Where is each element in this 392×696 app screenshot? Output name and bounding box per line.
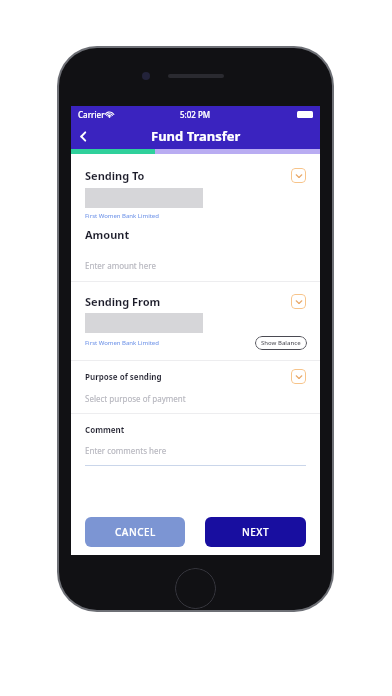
button[interactable]: Select recipient [291, 168, 306, 183]
staticText: Sending From [85, 294, 291, 309]
staticText: First Women Bank Limited [85, 212, 159, 220]
staticText: Purpose of sending [85, 371, 291, 382]
button[interactable]: Select purpose of payment [85, 392, 306, 404]
button[interactable]: Home [175, 568, 216, 609]
staticText: Select purpose of payment [85, 393, 186, 404]
button[interactable]: Enter amount here [85, 258, 306, 272]
button[interactable]: NEXT [205, 517, 306, 547]
staticText: Sending To [85, 168, 291, 183]
button[interactable]: Select purpose [291, 369, 306, 384]
button[interactable]: Sending To [85, 168, 306, 183]
button[interactable]: Enter comments here [85, 444, 306, 456]
staticText: CANCEL [115, 525, 156, 539]
staticText: Enter comments here [85, 445, 167, 456]
staticText: Amount [85, 227, 130, 242]
staticText: First Women Bank Limited [85, 339, 255, 347]
button[interactable]: Back [71, 124, 95, 148]
staticText: NEXT [242, 525, 270, 539]
button[interactable]: Purpose of sending [85, 369, 306, 384]
staticText: Show Balance [261, 339, 301, 347]
staticText: Fund Transfer [151, 127, 241, 145]
button[interactable]: Sending From [85, 294, 306, 309]
staticText: Comment [85, 424, 125, 435]
button[interactable]: Select source account [291, 294, 306, 309]
staticText: 5:02 PM [180, 109, 211, 120]
button[interactable]: Show Balance [255, 336, 307, 350]
button[interactable]: CANCEL [85, 517, 185, 547]
staticText: Enter amount here [85, 260, 156, 271]
staticText: Carrier [78, 109, 105, 120]
